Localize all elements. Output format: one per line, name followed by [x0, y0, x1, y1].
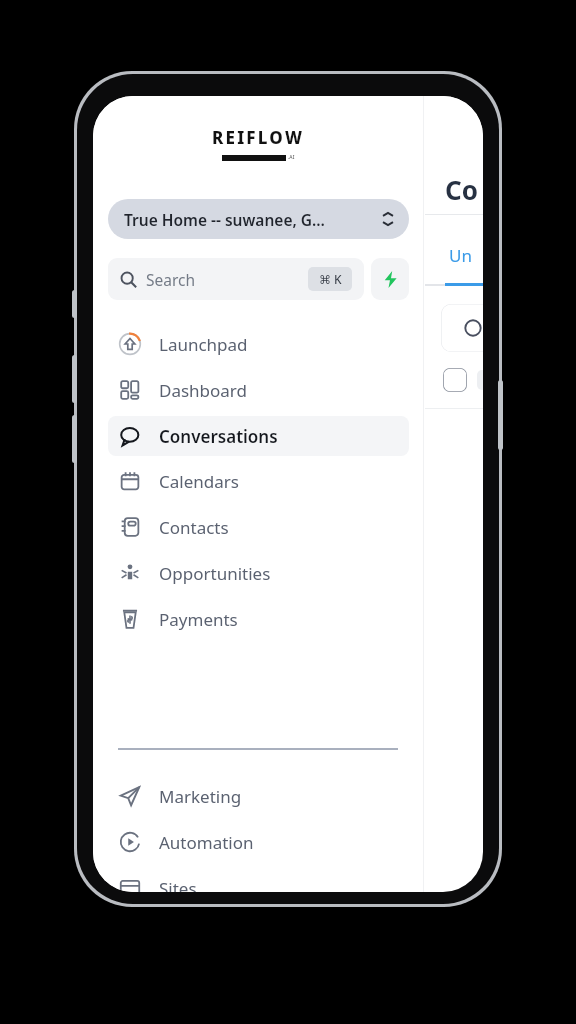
staticText: Search — [146, 269, 308, 290]
button[interactable]: Contacts — [108, 507, 409, 547]
button[interactable]: Payments — [108, 599, 409, 639]
button[interactable]: Marketing — [108, 776, 409, 816]
staticText: .AI — [288, 154, 295, 161]
button[interactable]: Conversations — [108, 416, 409, 456]
staticText: Launchpad — [159, 333, 248, 356]
button[interactable]: Calendars — [108, 461, 409, 501]
staticText: Contacts — [159, 516, 229, 539]
button[interactable]: Sites — [108, 868, 409, 892]
staticText: Sites — [159, 877, 197, 892]
staticText: Co — [445, 172, 478, 207]
staticText: ⌘ K — [319, 271, 342, 287]
staticText: Opportunities — [159, 562, 271, 585]
button[interactable]: Search — [108, 258, 364, 300]
staticText: Un — [449, 244, 472, 267]
staticText: Marketing — [159, 785, 242, 808]
staticText: Payments — [159, 608, 238, 631]
staticText: Calendars — [159, 470, 239, 493]
staticText: Dashboard — [159, 379, 248, 402]
button[interactable]: Opportunities — [108, 553, 409, 593]
staticText: Automation — [159, 831, 254, 854]
button[interactable]: True Home -- suwanee, G… — [108, 199, 409, 239]
button[interactable]: Quick actions — [371, 258, 409, 300]
button[interactable]: Launchpad — [108, 324, 409, 364]
staticText: True Home -- suwanee, G… — [124, 209, 381, 230]
button[interactable]: Dashboard — [108, 370, 409, 410]
staticText: Conversations — [159, 425, 278, 448]
staticText: REIFLOW — [212, 126, 305, 149]
button[interactable]: Automation — [108, 822, 409, 862]
